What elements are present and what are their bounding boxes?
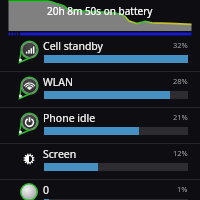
staticText: 1% [177,184,188,194]
other: Phone idle [17,111,41,135]
staticText: 21% [173,112,188,122]
button[interactable]: Screen [0,144,200,179]
staticText: WLAN [43,75,73,89]
button[interactable]: Phone idle [0,108,200,143]
other: Screen [22,152,36,166]
other: WLAN [17,75,41,99]
button[interactable]: App [0,180,200,200]
button[interactable]: Cell standby [0,36,200,71]
staticText: Phone idle [43,111,96,125]
staticText: 0 [43,183,50,197]
button[interactable]: WLAN [0,72,200,107]
staticText: Screen [43,147,77,161]
other: Cell standby [17,39,41,63]
staticText: 12% [173,148,188,158]
staticText: 28% [173,76,188,86]
staticText: 20h 8m 50s on battery [47,4,153,18]
staticText: 32% [173,40,188,50]
staticText: Cell standby [43,39,103,53]
other: App [17,183,41,200]
